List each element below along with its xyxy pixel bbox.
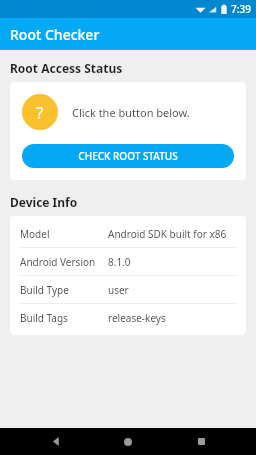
staticText: user bbox=[108, 283, 129, 297]
staticText: 7:39 bbox=[231, 2, 251, 16]
staticText: Build Tags bbox=[20, 311, 108, 325]
staticText: Build Type bbox=[20, 283, 108, 297]
staticText: 8.1.0 bbox=[108, 255, 131, 269]
staticText: ? bbox=[36, 101, 44, 124]
staticText: release-keys bbox=[108, 311, 166, 325]
staticText: Device Info bbox=[10, 194, 78, 210]
staticText: Android Version bbox=[20, 255, 108, 269]
staticText: Click the button below. bbox=[72, 105, 190, 120]
staticText: Root Checker bbox=[10, 25, 100, 44]
button[interactable]: Back bbox=[39, 428, 73, 455]
staticText: CHECK ROOT STATUS bbox=[78, 149, 178, 163]
button[interactable]: CHECK ROOT STATUS bbox=[22, 144, 234, 168]
button[interactable]: Recent apps bbox=[184, 428, 218, 455]
staticText: Model bbox=[20, 227, 108, 241]
staticText: Root Access Status bbox=[10, 60, 123, 76]
button[interactable]: Home bbox=[111, 428, 145, 455]
staticText: Android SDK built for x86 bbox=[108, 227, 227, 241]
